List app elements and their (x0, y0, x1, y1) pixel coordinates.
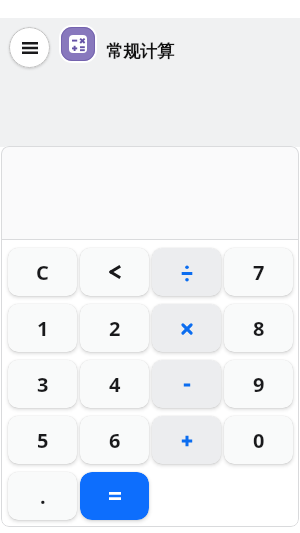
staticText: C (36, 259, 49, 286)
button[interactable]: 8 (224, 304, 293, 352)
staticText: 8 (253, 315, 265, 342)
button[interactable]: 2 (80, 304, 149, 352)
button[interactable]: 6 (80, 416, 149, 464)
button[interactable]: 0 (224, 416, 293, 464)
button[interactable] (80, 472, 149, 520)
button[interactable]: 9 (224, 360, 293, 408)
staticText: 4 (109, 371, 121, 398)
button[interactable]: 3 (8, 360, 77, 408)
button[interactable] (61, 27, 95, 61)
button[interactable] (152, 360, 221, 408)
button[interactable]: 7 (224, 248, 293, 296)
staticText: 3 (37, 371, 49, 398)
button[interactable] (9, 27, 50, 68)
button[interactable] (152, 304, 221, 352)
button[interactable]: 5 (8, 416, 77, 464)
button[interactable]: C (8, 248, 77, 296)
staticText: 5 (37, 427, 49, 454)
button[interactable]: . (8, 472, 77, 520)
staticText: 1 (37, 315, 49, 342)
staticText: 2 (109, 315, 121, 342)
staticText: 常规计算 (106, 41, 174, 62)
button[interactable] (152, 248, 221, 296)
staticText: . (40, 483, 46, 510)
staticText: 0 (253, 427, 265, 454)
button[interactable] (152, 416, 221, 464)
staticText: 6 (109, 427, 121, 454)
button[interactable]: 1 (8, 304, 77, 352)
button[interactable] (80, 248, 149, 296)
button[interactable]: 4 (80, 360, 149, 408)
staticText: 7 (253, 259, 265, 286)
staticText: 9 (253, 371, 265, 398)
